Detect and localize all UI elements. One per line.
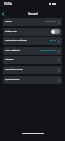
button[interactable]: Name (3, 18, 62, 26)
button[interactable]: Mounting Guide (3, 66, 62, 74)
staticText: Time Settings (5, 49, 20, 52)
button[interactable]: Connection Settings (3, 37, 62, 45)
staticText: Storage (5, 58, 14, 61)
button[interactable]: About Device (3, 76, 62, 84)
staticText: 10:37 (4, 2, 11, 5)
staticText: Mounting Guide (5, 68, 23, 71)
staticText: Backyard (45, 20, 56, 23)
staticText: Name (5, 20, 12, 23)
staticText: Wi-Fi (50, 39, 56, 42)
staticText: Status LED (5, 30, 17, 33)
staticText: General (28, 12, 38, 15)
staticText: (CEST) Prague (40, 49, 56, 52)
staticText: Connection Settings (5, 39, 27, 42)
button[interactable]: Time Settings (3, 47, 62, 55)
button[interactable]: Back (0, 9, 8, 19)
staticText: About Device (5, 78, 20, 81)
button[interactable]: Status LED (3, 28, 62, 36)
button[interactable]: Storage (3, 56, 62, 64)
